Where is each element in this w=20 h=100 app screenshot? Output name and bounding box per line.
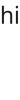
staticText: hi [0, 0, 20, 30]
